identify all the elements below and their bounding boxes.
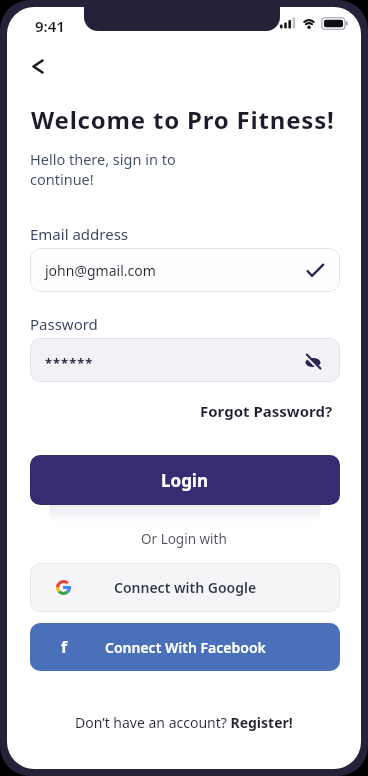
button[interactable]: Login — [30, 455, 340, 505]
staticText: Email address — [30, 224, 129, 244]
button[interactable]: Forgot Password? — [200, 401, 333, 421]
staticText: Welcome to Pro Fitness! — [31, 103, 335, 136]
staticText: Connect with Google — [114, 578, 257, 597]
staticText: Password — [30, 314, 98, 334]
button[interactable]: Don’t have an account? Register! — [75, 713, 293, 732]
button[interactable]: john@gmail.com — [30, 248, 340, 292]
button[interactable]: f — [30, 623, 340, 671]
staticText: john@gmail.com — [45, 261, 156, 280]
staticText: f — [61, 636, 68, 658]
staticText: continue! — [30, 169, 94, 189]
button[interactable]: Connect with Google — [30, 563, 340, 612]
button[interactable]: ****** — [30, 338, 340, 382]
staticText: Hello there, sign in to — [30, 149, 176, 169]
button[interactable] — [21, 49, 55, 83]
staticText: Connect With Facebook — [105, 638, 266, 657]
staticText: 9:41 — [35, 16, 65, 36]
staticText: ****** — [45, 354, 94, 372]
staticText: Or Login with — [141, 530, 227, 548]
staticText: Login — [161, 469, 209, 492]
